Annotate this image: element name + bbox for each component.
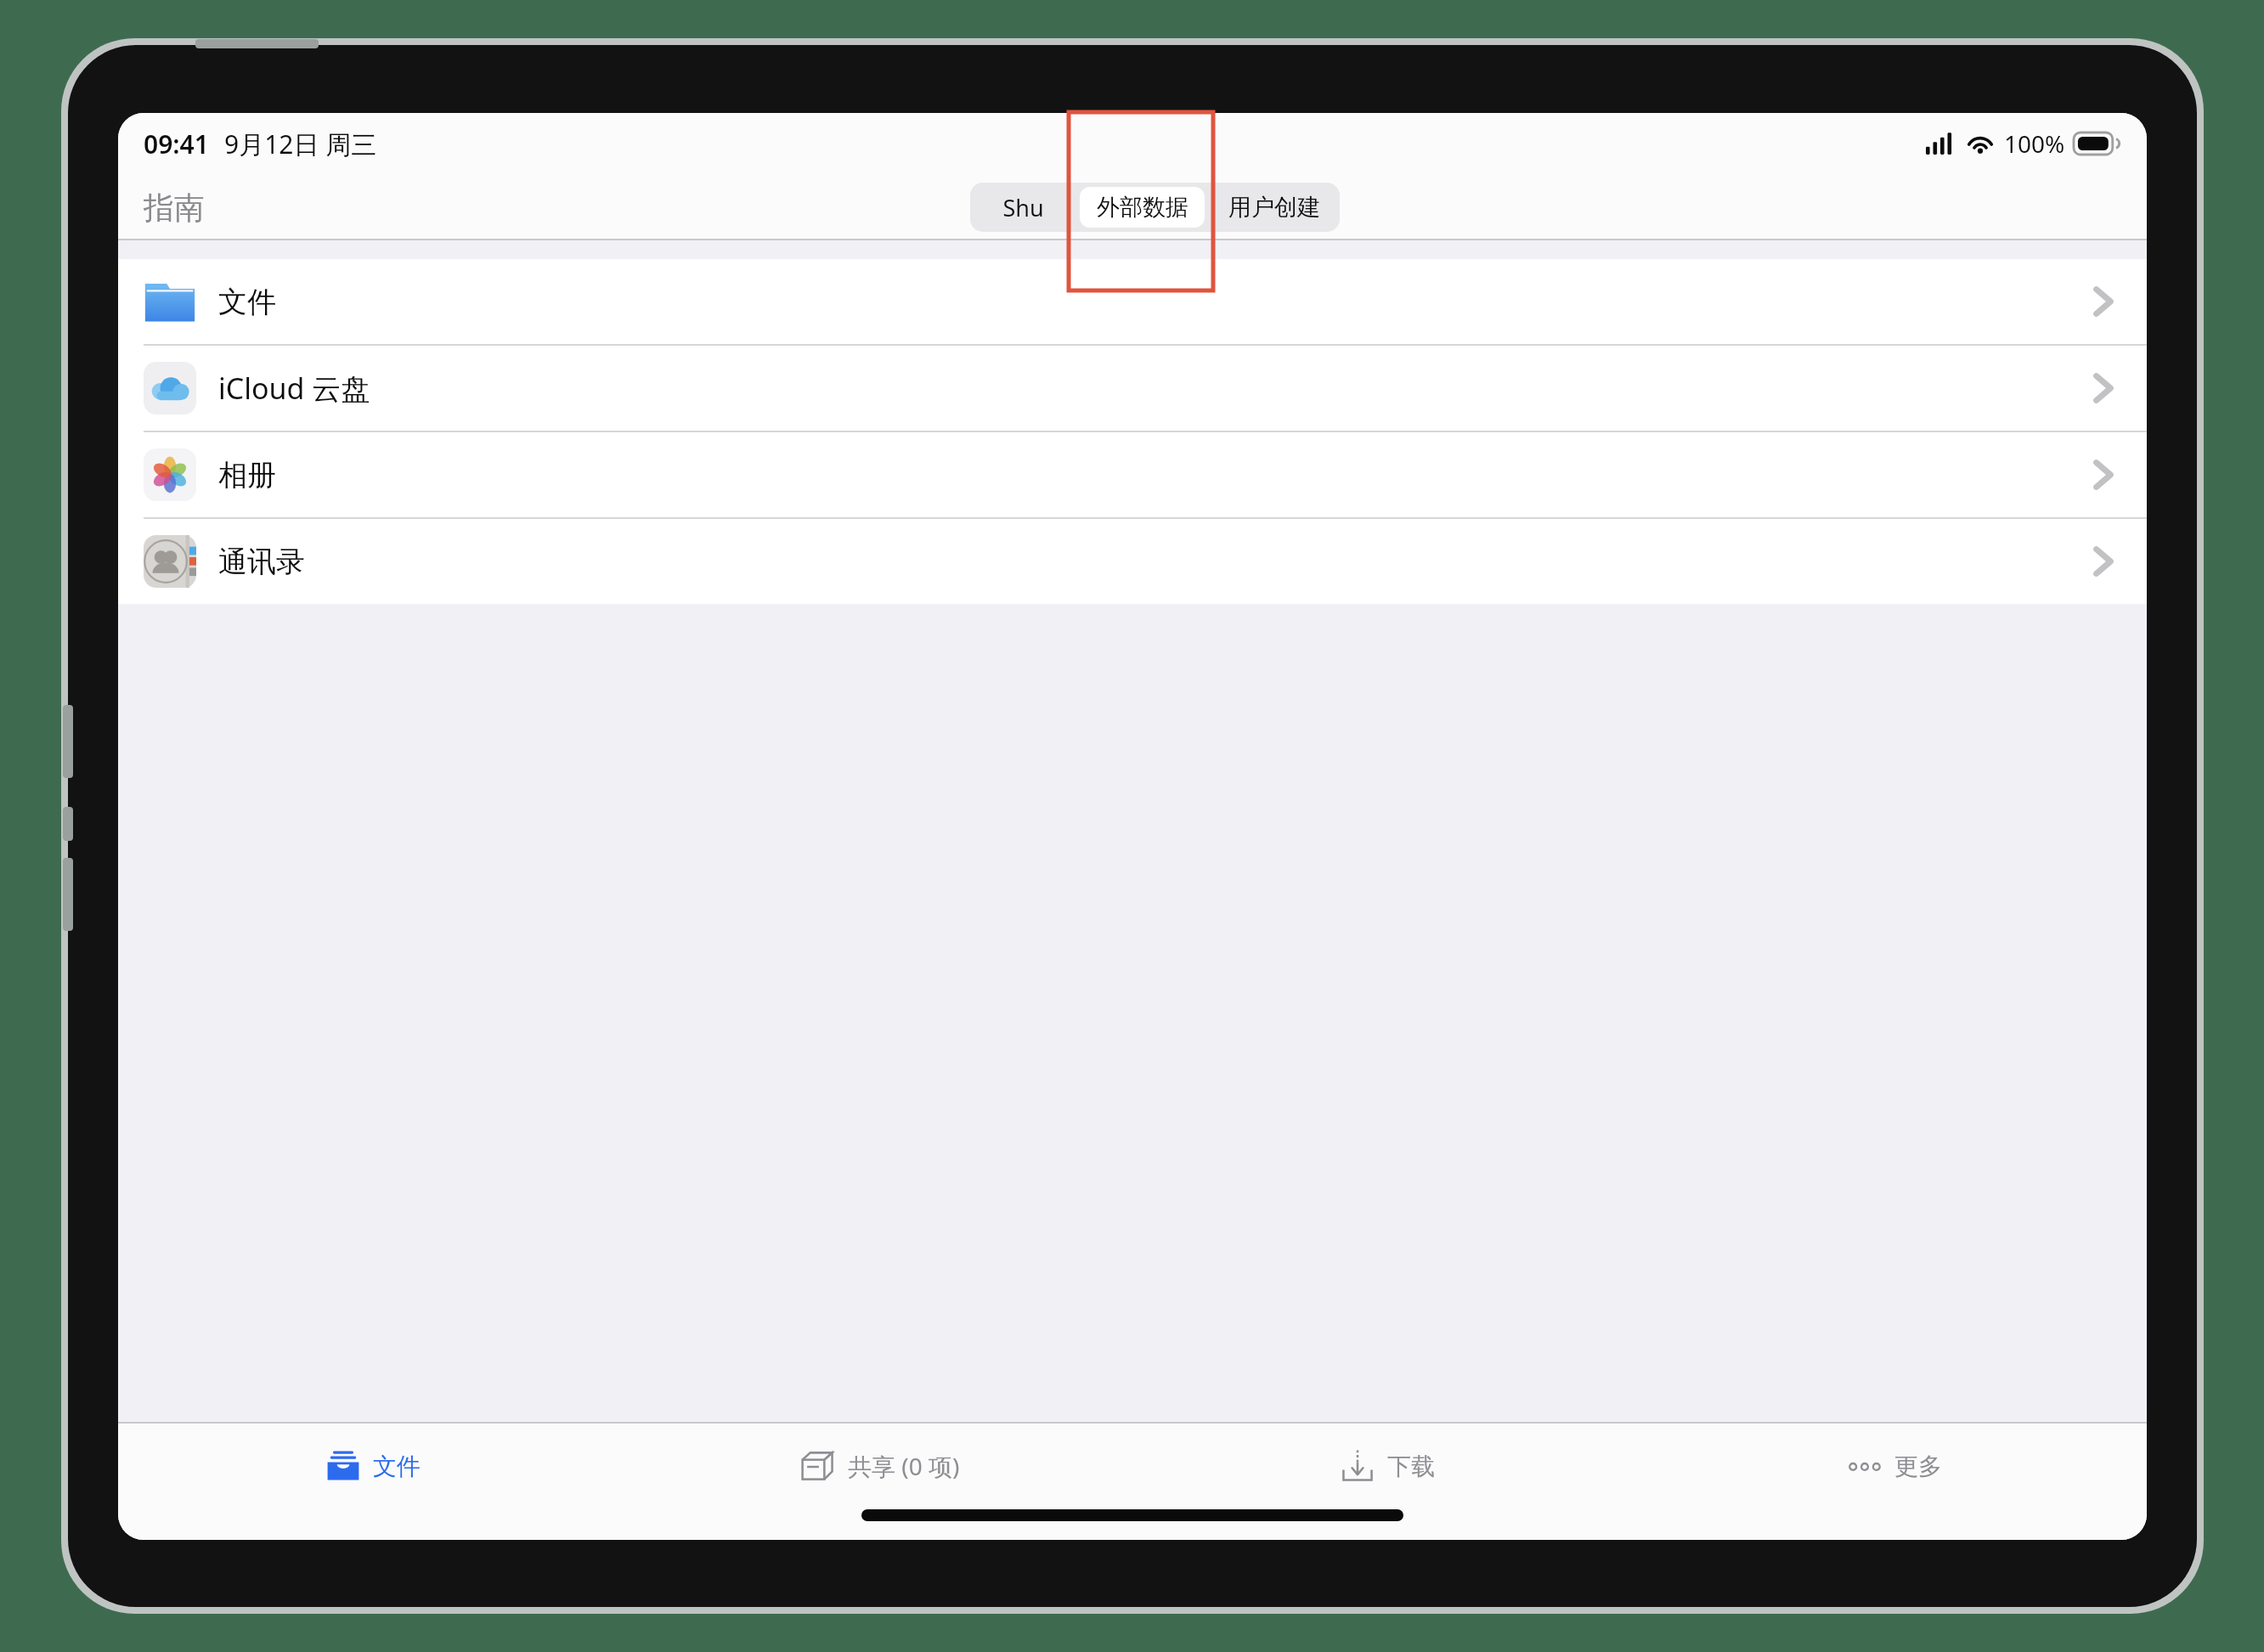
staticText: 9月12日 周三 [224,127,377,161]
button[interactable]: 通讯录 [118,519,2147,604]
staticText: 通讯录 [218,544,305,580]
button[interactable]: 下载 [1132,1424,1640,1508]
staticText: 相册 [218,457,276,493]
staticText: 09:41 [144,127,209,161]
button[interactable]: 外部数据 [1080,187,1205,228]
staticText: Shu [1002,192,1044,223]
staticText: 文件 [373,1452,421,1481]
button[interactable]: 相册 [118,432,2147,517]
button[interactable]: Shu [974,187,1073,228]
button[interactable]: 共享 (0 项) [625,1424,1132,1508]
staticText: 下载 [1387,1452,1435,1481]
staticText: iCloud 云盘 [218,369,370,408]
button[interactable]: 文件 [118,259,2147,344]
staticText: 共享 (0 项) [848,1450,960,1482]
staticText: 用户创建 [1228,193,1320,222]
button[interactable]: 用户创建 [1211,187,1336,228]
button[interactable]: 更多 [1640,1424,2147,1508]
staticText: 文件 [218,284,276,320]
staticText: 指南 [144,189,205,227]
staticText: 100% [2004,127,2065,160]
button[interactable]: 文件 [118,1424,625,1508]
button[interactable]: iCloud 云盘 [118,346,2147,431]
staticText: 更多 [1894,1452,1942,1481]
staticText: 外部数据 [1097,193,1188,222]
